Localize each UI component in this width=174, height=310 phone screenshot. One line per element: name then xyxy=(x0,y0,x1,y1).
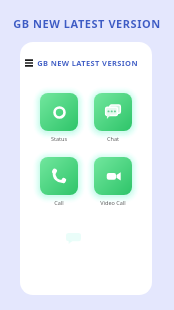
button[interactable]: Menu xyxy=(22,56,36,70)
button[interactable]: Status xyxy=(40,93,78,142)
staticText: GB NEW LATEST VERSION xyxy=(13,16,161,31)
staticText: Video Call xyxy=(94,199,132,206)
staticText: GB NEW LATEST VERSION xyxy=(37,58,138,68)
button[interactable]: Video Call xyxy=(94,157,132,206)
staticText: Call xyxy=(40,199,78,206)
button[interactable]: Call xyxy=(40,157,78,206)
staticText: Status xyxy=(40,135,78,142)
button[interactable]: Chat xyxy=(94,93,132,142)
staticText: Chat xyxy=(94,135,132,142)
